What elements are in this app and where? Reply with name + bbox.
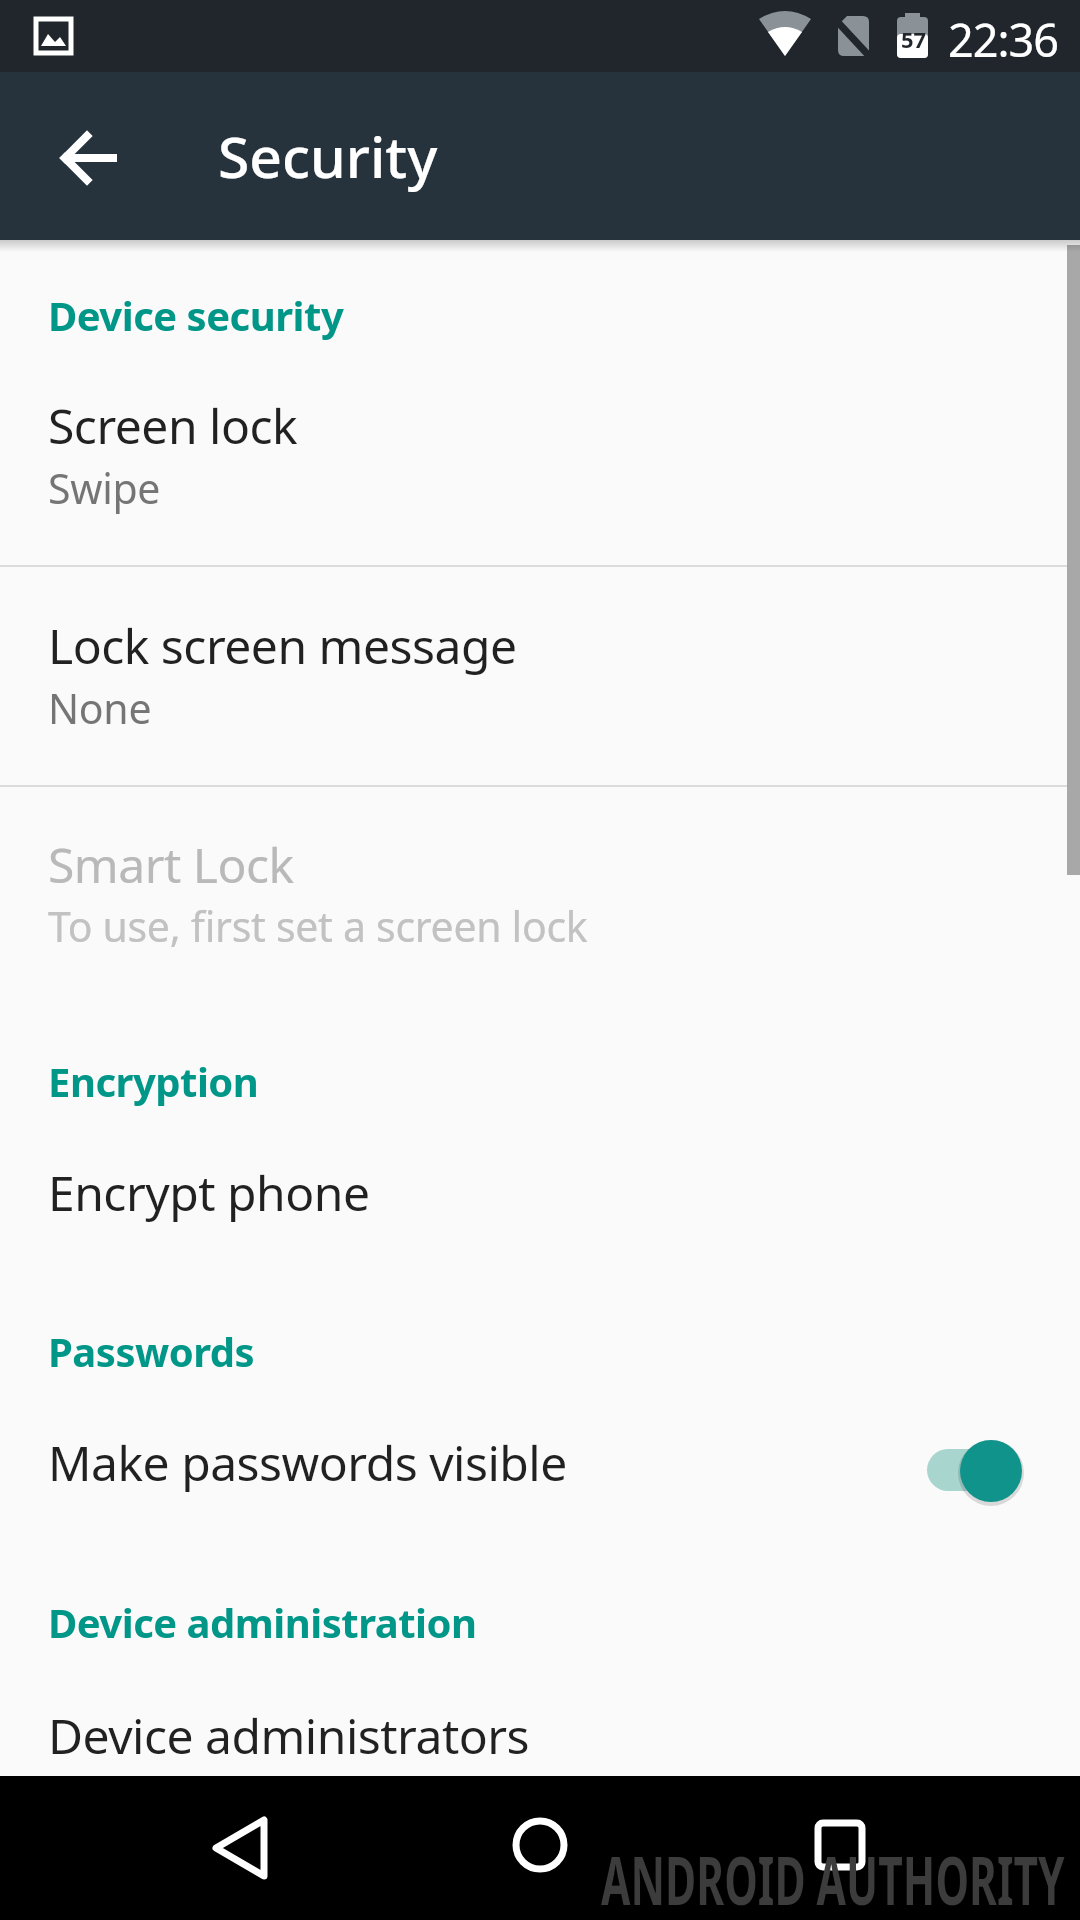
button[interactable]: Lock screen message bbox=[0, 567, 1080, 785]
button[interactable] bbox=[490, 1795, 590, 1895]
button[interactable]: Make passwords visible bbox=[0, 1395, 1080, 1555]
staticText: Encrypt phone bbox=[48, 1160, 370, 1225]
button[interactable]: Encrypt phone bbox=[0, 1125, 1080, 1285]
button[interactable]: Device administrators bbox=[0, 1665, 1080, 1776]
staticText: Swipe bbox=[48, 460, 161, 516]
staticText: Device security bbox=[48, 288, 344, 342]
staticText: Passwords bbox=[48, 1324, 255, 1378]
staticText: 57 bbox=[901, 24, 927, 54]
staticText: Smart Lock bbox=[48, 832, 294, 897]
staticText: None bbox=[48, 680, 152, 736]
staticText: Device administration bbox=[48, 1595, 477, 1649]
button[interactable]: Smart Lock bbox=[0, 788, 1080, 1018]
staticText: Device administrators bbox=[48, 1703, 530, 1768]
button[interactable]: Screen lock bbox=[0, 360, 1080, 565]
staticText: Make passwords visible bbox=[48, 1430, 567, 1495]
staticText: To use, first set a screen lock bbox=[48, 898, 588, 954]
staticText: Security bbox=[218, 117, 438, 195]
staticText: Screen lock bbox=[48, 393, 298, 458]
button[interactable] bbox=[190, 1798, 290, 1898]
staticText: ANDROID AUTHORITY bbox=[601, 1834, 1065, 1920]
staticText: Lock screen message bbox=[48, 613, 517, 678]
staticText: Encryption bbox=[48, 1054, 259, 1108]
staticText: 22:36 bbox=[948, 9, 1059, 70]
button[interactable] bbox=[790, 1795, 890, 1895]
button[interactable] bbox=[33, 102, 145, 214]
